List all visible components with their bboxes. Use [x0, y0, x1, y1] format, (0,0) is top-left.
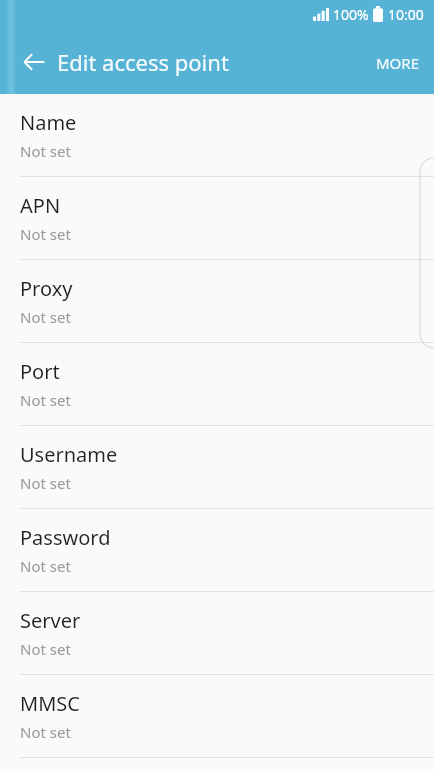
staticText: Port	[20, 358, 60, 385]
staticText: 10:00	[388, 5, 424, 24]
button[interactable]: Port	[0, 343, 434, 426]
button[interactable]: Name	[0, 94, 434, 177]
staticText: Proxy	[20, 275, 73, 302]
staticText: Name	[20, 109, 77, 136]
staticText: Not set	[20, 141, 71, 161]
button[interactable]: MORE	[361, 41, 434, 85]
staticText: MORE	[376, 53, 419, 73]
button[interactable]: MMSC	[0, 675, 434, 758]
staticText: Not set	[20, 722, 71, 742]
button[interactable]: Username	[0, 426, 434, 509]
staticText: Edit access point	[57, 47, 229, 77]
button[interactable]: APN	[0, 177, 434, 260]
staticText: Not set	[20, 473, 71, 493]
button[interactable]: Password	[0, 509, 434, 592]
staticText: Server	[20, 607, 81, 634]
staticText: 100%	[333, 5, 369, 24]
button[interactable]: Navigate up	[10, 38, 58, 86]
staticText: Not set	[20, 307, 71, 327]
button[interactable]: Server	[0, 592, 434, 675]
staticText: APN	[20, 192, 61, 219]
staticText: Not set	[20, 390, 71, 410]
staticText: Not set	[20, 639, 71, 659]
staticText: Not set	[20, 224, 71, 244]
staticText: Password	[20, 524, 111, 551]
staticText: Username	[20, 441, 118, 468]
staticText: MMSC	[20, 690, 80, 717]
staticText: Not set	[20, 556, 71, 576]
button[interactable]: Proxy	[0, 260, 434, 343]
